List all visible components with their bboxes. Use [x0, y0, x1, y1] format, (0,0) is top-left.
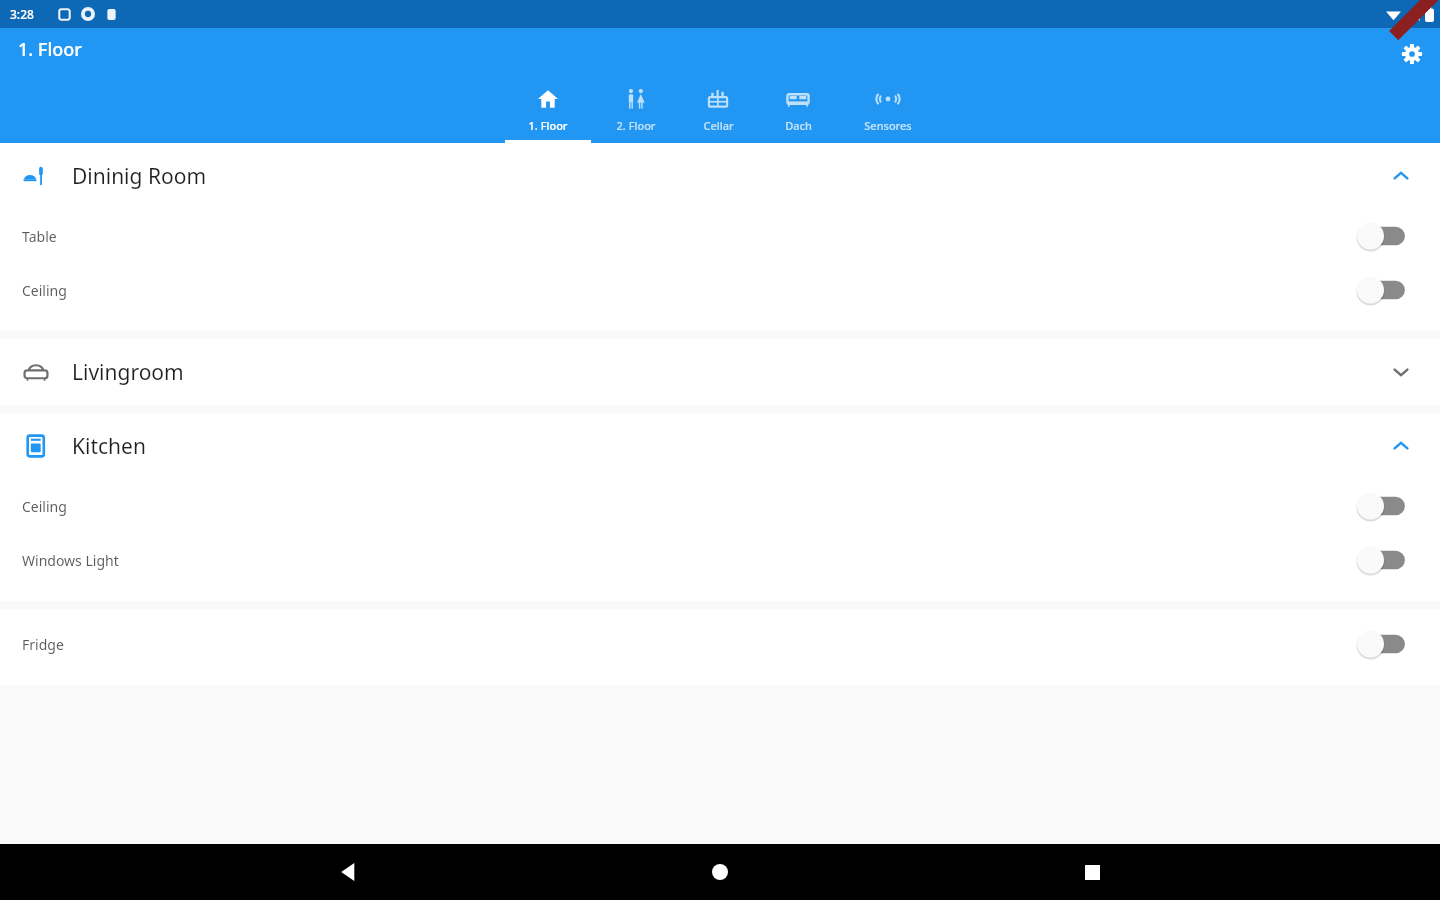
- button[interactable]: Expand: [1384, 355, 1418, 389]
- button[interactable]: Table: [0, 209, 1440, 263]
- button[interactable]: Collapse: [1384, 159, 1418, 193]
- staticText: Cellar: [703, 118, 734, 133]
- button[interactable]: Recents: [1068, 848, 1116, 896]
- button[interactable]: Kitchen: [0, 413, 1440, 479]
- staticText: Dininig Room: [72, 162, 207, 191]
- staticText: Fridge: [22, 635, 64, 654]
- button[interactable]: Settings: [1394, 36, 1430, 72]
- button[interactable]: Toggle: [1356, 491, 1408, 521]
- staticText: Table: [22, 227, 57, 246]
- button[interactable]: Windows Light: [0, 533, 1440, 587]
- button[interactable]: Toggle: [1356, 221, 1408, 251]
- staticText: Dach: [785, 118, 812, 133]
- button[interactable]: Back: [324, 848, 372, 896]
- button[interactable]: Dach: [758, 65, 838, 143]
- button[interactable]: Cellar: [678, 65, 758, 143]
- button[interactable]: 1. Floor: [503, 65, 593, 143]
- button[interactable]: Fridge: [0, 617, 1440, 671]
- button[interactable]: Toggle: [1356, 545, 1408, 575]
- staticText: Ceiling: [22, 497, 67, 516]
- staticText: 2. Floor: [616, 118, 656, 133]
- staticText: Windows Light: [22, 551, 119, 570]
- staticText: Ceiling: [22, 281, 67, 300]
- button[interactable]: 2. Floor: [593, 65, 678, 143]
- button[interactable]: Toggle: [1356, 629, 1408, 659]
- staticText: 1. Floor: [528, 118, 568, 133]
- button[interactable]: Ceiling: [0, 263, 1440, 317]
- staticText: Livingroom: [72, 358, 184, 387]
- staticText: Kitchen: [72, 432, 146, 461]
- button[interactable]: Dininig Room: [0, 143, 1440, 209]
- button[interactable]: Collapse: [1384, 429, 1418, 463]
- staticText: 1. Floor: [18, 37, 82, 62]
- button[interactable]: Home: [696, 848, 744, 896]
- staticText: 3:28: [10, 6, 34, 22]
- button[interactable]: Ceiling: [0, 479, 1440, 533]
- button[interactable]: Sensores: [838, 65, 938, 143]
- button[interactable]: Toggle: [1356, 275, 1408, 305]
- staticText: Sensores: [864, 118, 912, 133]
- button[interactable]: Livingroom: [0, 339, 1440, 405]
